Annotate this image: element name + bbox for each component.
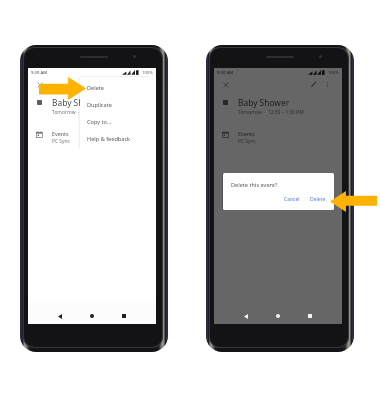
button[interactable]: Recent apps — [114, 306, 134, 326]
button[interactable]: Duplicate — [80, 96, 152, 113]
button[interactable]: Close — [35, 80, 45, 90]
staticText: Baby Shower — [238, 97, 290, 108]
staticText: 9:30 AM — [31, 70, 48, 76]
staticText: Events — [52, 130, 69, 137]
staticText: 100% — [142, 70, 153, 76]
staticText: 100% — [328, 70, 339, 76]
staticText: Events — [238, 130, 255, 137]
staticText: Tomorrow · — [52, 109, 80, 116]
staticText: Delete — [310, 196, 326, 203]
button[interactable]: Home — [268, 306, 288, 326]
button[interactable]: Copy to... — [80, 113, 152, 130]
button[interactable]: Back — [236, 306, 256, 326]
button[interactable]: Recent apps — [300, 306, 320, 326]
button[interactable]: Back — [50, 306, 70, 326]
staticText: PC Sync — [238, 138, 256, 145]
button[interactable]: Edit — [308, 79, 318, 89]
button[interactable]: Home — [82, 306, 102, 326]
staticText: 9:30 AM — [217, 70, 234, 76]
staticText: Tomorrow · 12:30 – 1:30 PM — [238, 109, 304, 116]
button[interactable]: Delete — [80, 79, 152, 96]
button[interactable]: Close — [221, 80, 231, 90]
staticText: Copy to... — [87, 118, 112, 126]
button[interactable]: More options — [322, 79, 332, 89]
button[interactable]: Cancel — [281, 194, 303, 205]
staticText: Duplicate — [87, 101, 112, 109]
staticText: Cancel — [284, 196, 300, 203]
button[interactable]: Delete — [307, 194, 328, 205]
staticText: Delete this event? — [231, 181, 278, 189]
staticText: Baby Sh — [52, 97, 84, 108]
button[interactable]: Help & feedback — [80, 130, 152, 147]
staticText: PC Sync — [52, 138, 70, 145]
staticText: Delete — [87, 84, 105, 92]
staticText: Help & feedback — [87, 135, 131, 143]
